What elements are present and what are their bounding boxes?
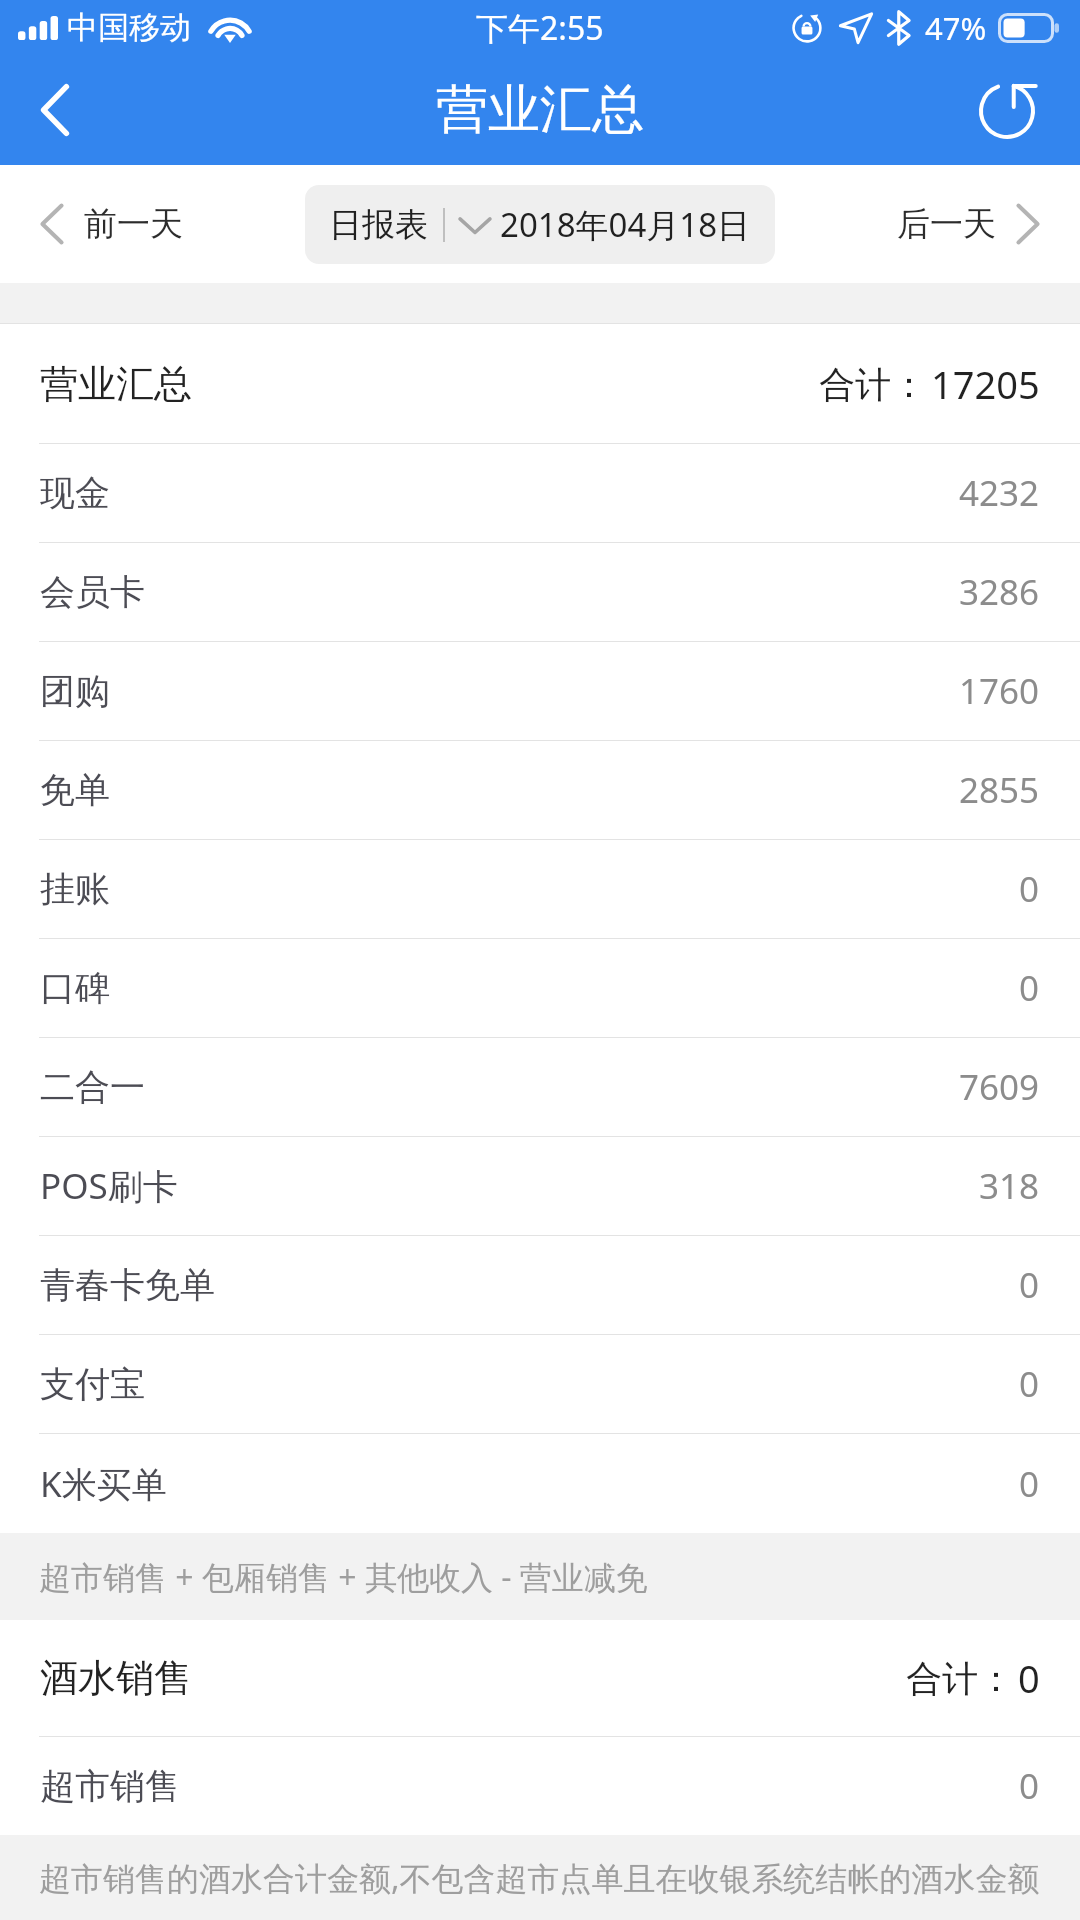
staticText: 4232: [959, 469, 1040, 517]
button[interactable]: 日报表: [305, 185, 775, 264]
staticText: 会员卡: [40, 570, 145, 614]
button[interactable]: 二合一: [0, 1038, 1080, 1136]
staticText: 合计：: [906, 1656, 1014, 1701]
staticText: 0: [1019, 1261, 1040, 1309]
button[interactable]: 超市销售: [0, 1737, 1080, 1835]
staticText: 酒水销售: [40, 1654, 192, 1702]
staticText: 0: [1019, 964, 1040, 1012]
staticText: 挂账: [40, 867, 110, 911]
button[interactable]: 现金: [0, 444, 1080, 542]
staticText: 后一天: [897, 203, 996, 245]
staticText: 1760: [959, 667, 1040, 715]
staticText: 7609: [959, 1063, 1040, 1111]
button[interactable]: 前一天: [0, 165, 207, 283]
button[interactable]: Refresh: [956, 55, 1080, 165]
button[interactable]: 口碑: [0, 939, 1080, 1037]
staticText: 营业汇总: [40, 360, 192, 408]
staticText: 2855: [959, 766, 1040, 814]
button[interactable]: 营业汇总: [0, 324, 1080, 443]
staticText: 日报表: [329, 204, 428, 246]
staticText: 前一天: [84, 203, 183, 245]
staticText: 口碑: [40, 966, 110, 1010]
staticText: 营业汇总: [436, 77, 644, 143]
button[interactable]: 团购: [0, 642, 1080, 740]
staticText: 青春卡免单: [40, 1263, 215, 1307]
staticText: 3286: [959, 568, 1040, 616]
staticText: POS刷卡: [40, 1162, 178, 1210]
staticText: 17205: [931, 358, 1040, 410]
staticText: 支付宝: [40, 1362, 145, 1406]
staticText: 二合一: [40, 1065, 145, 1109]
staticText: 超市销售的酒水合计金额,不包含超市点单且在收银系统结帐的酒水金额: [39, 1856, 1040, 1900]
staticText: 超市销售 + 包厢销售 + 其他收入 - 营业减免: [39, 1555, 648, 1599]
button[interactable]: 支付宝: [0, 1335, 1080, 1433]
staticText: 318: [979, 1162, 1040, 1210]
staticText: 中国移动: [67, 8, 191, 47]
staticText: 下午2:55: [476, 6, 604, 50]
staticText: 合计：: [819, 362, 927, 407]
staticText: 免单: [40, 768, 110, 812]
button[interactable]: 挂账: [0, 840, 1080, 938]
staticText: 团购: [40, 669, 110, 713]
button[interactable]: Back: [0, 55, 110, 165]
staticText: 0: [1019, 1762, 1040, 1810]
button[interactable]: 青春卡免单: [0, 1236, 1080, 1334]
staticText: 2018年04月18日: [500, 202, 751, 247]
button[interactable]: POS刷卡: [0, 1137, 1080, 1235]
staticText: 47%: [925, 7, 987, 49]
button[interactable]: 后一天: [873, 165, 1080, 283]
staticText: 0: [1018, 1652, 1040, 1704]
staticText: 0: [1019, 865, 1040, 913]
button[interactable]: 免单: [0, 741, 1080, 839]
button[interactable]: 会员卡: [0, 543, 1080, 641]
button[interactable]: K米买单: [0, 1434, 1080, 1533]
staticText: 超市销售: [40, 1764, 180, 1808]
staticText: 0: [1019, 1460, 1040, 1508]
staticText: K米买单: [40, 1460, 167, 1508]
staticText: 现金: [40, 471, 110, 515]
staticText: 0: [1019, 1360, 1040, 1408]
button[interactable]: 酒水销售: [0, 1620, 1080, 1736]
